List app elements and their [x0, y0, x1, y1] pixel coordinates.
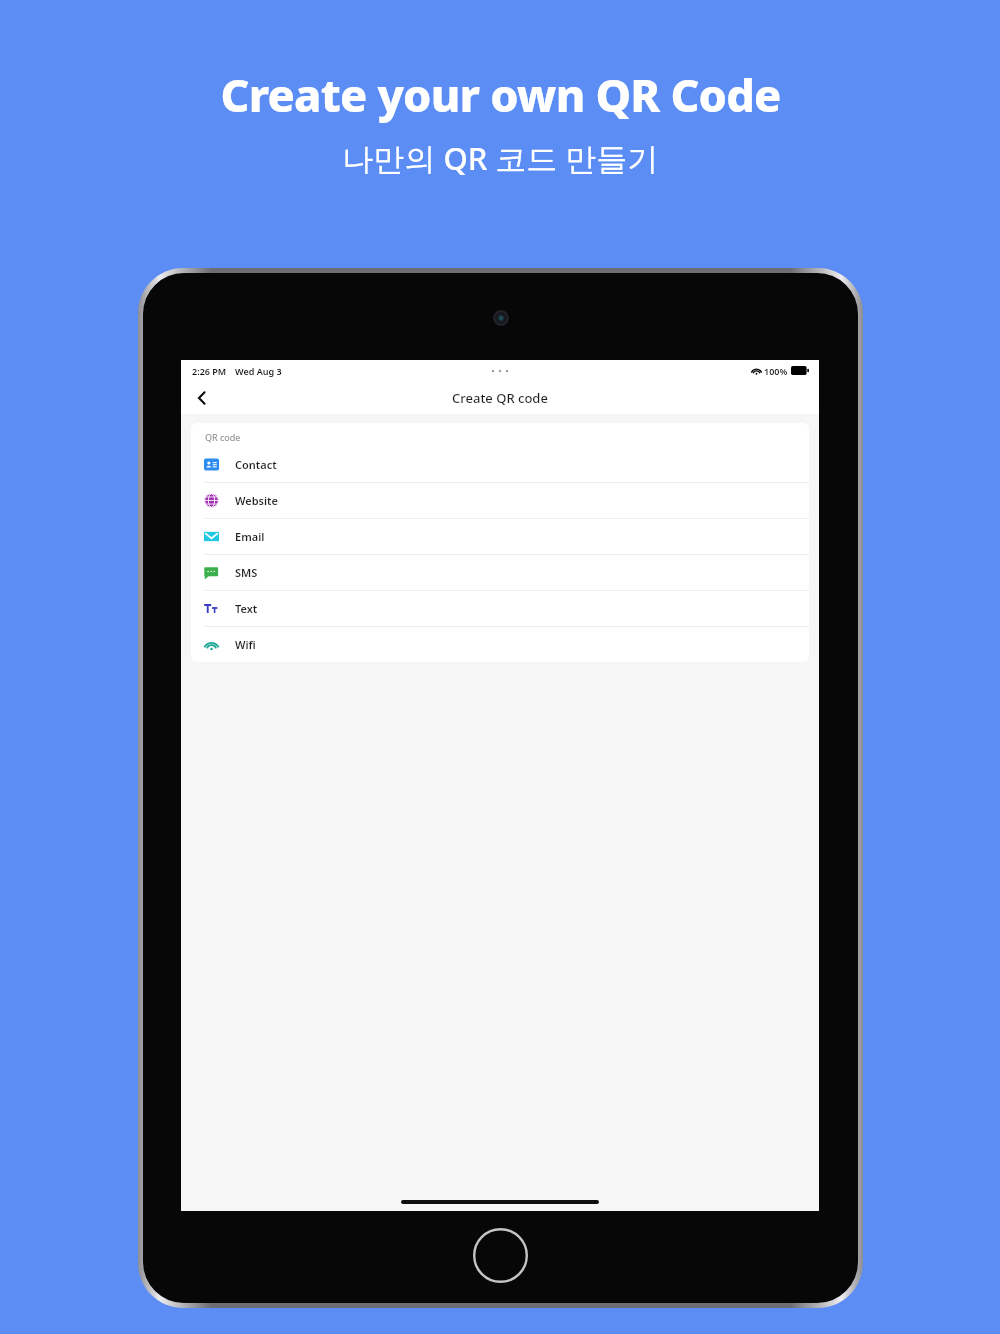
- staticText: 나만의 QR 코드 만들기: [342, 137, 659, 179]
- button[interactable]: SMS: [191, 555, 809, 591]
- button[interactable]: Back: [185, 381, 219, 414]
- staticText: QR code: [205, 431, 241, 443]
- staticText: Wifi: [235, 637, 256, 652]
- staticText: SMS: [235, 565, 258, 580]
- button[interactable]: Website: [191, 483, 809, 519]
- staticText: Text: [235, 601, 258, 616]
- button[interactable]: Email: [191, 519, 809, 555]
- staticText: 2:26 PM: [192, 365, 227, 377]
- staticText: Website: [235, 493, 279, 508]
- staticText: 100%: [764, 365, 788, 377]
- button[interactable]: Wifi: [191, 627, 809, 662]
- staticText: Create your own QR Code: [220, 64, 781, 125]
- staticText: Email: [235, 529, 265, 544]
- staticText: Contact: [235, 457, 277, 472]
- button[interactable]: Text: [191, 591, 809, 627]
- button[interactable]: Contact: [191, 447, 809, 483]
- staticText: Create QR code: [452, 389, 548, 407]
- staticText: Wed Aug 3: [235, 365, 282, 377]
